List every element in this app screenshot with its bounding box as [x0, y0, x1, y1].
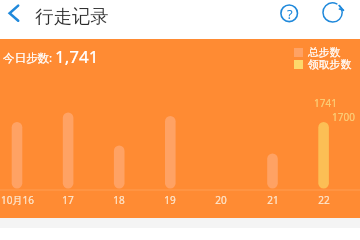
staticText: ?: [287, 5, 293, 23]
staticText: 总步数: [308, 46, 341, 60]
staticText: 22: [318, 193, 330, 207]
button[interactable]: Back: [0, 0, 34, 39]
button[interactable]: Help: [276, 0, 302, 27]
button[interactable]: Refresh: [320, 0, 346, 27]
staticText: 18: [113, 193, 125, 207]
staticText: 20: [215, 193, 227, 207]
staticText: 领取步数: [308, 58, 352, 72]
staticText: 21: [267, 193, 279, 207]
staticText: 1700: [332, 110, 355, 124]
staticText: 1,741: [55, 45, 99, 68]
staticText: 17: [62, 193, 74, 207]
staticText: 今日步数:: [3, 50, 53, 66]
staticText: 1741: [314, 96, 337, 110]
staticText: 行走记录: [35, 5, 109, 28]
staticText: 10月16: [1, 193, 34, 207]
staticText: 19: [164, 193, 176, 207]
